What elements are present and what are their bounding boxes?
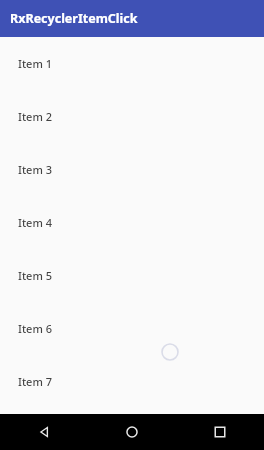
staticText: Item 4 [18,215,52,230]
button[interactable]: Item 4 [0,196,264,249]
button[interactable]: Item 6 [0,302,264,355]
staticText: Item 2 [18,109,52,124]
staticText: Item 7 [18,374,52,389]
staticText: Item 6 [18,321,52,336]
button[interactable]: Item 5 [0,249,264,302]
staticText: Item 5 [18,268,52,283]
staticText: Item 3 [18,162,52,177]
button[interactable]: Item 1 [0,37,264,90]
button[interactable]: Item 3 [0,143,264,196]
staticText: Item 1 [18,56,52,71]
button[interactable]: Recent apps [176,414,264,450]
staticText: RxRecyclerItemClick [10,10,138,27]
button[interactable]: Home [88,414,176,450]
button[interactable]: Item 7 [0,355,264,408]
button[interactable]: Back [0,414,88,450]
button[interactable]: Item 2 [0,90,264,143]
